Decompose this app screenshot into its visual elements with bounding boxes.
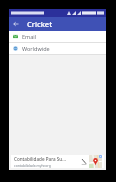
staticText: Contabilidade Para Su… bbox=[14, 156, 66, 162]
button[interactable]: Close ad bbox=[99, 155, 102, 158]
staticText: contabilidade.myhr.org bbox=[14, 163, 51, 168]
button[interactable]: Call bbox=[78, 155, 89, 168]
button[interactable]: Map location bbox=[89, 155, 102, 168]
button[interactable]: Email bbox=[9, 31, 106, 42]
button[interactable]: Worldwide bbox=[9, 43, 106, 54]
staticText: Worldwide bbox=[22, 45, 50, 52]
button[interactable]: Contabilidade Para Su… bbox=[11, 155, 104, 168]
staticText: Email bbox=[22, 33, 37, 40]
staticText: Cricket bbox=[27, 19, 53, 29]
button[interactable]: Navigate up bbox=[9, 17, 23, 31]
